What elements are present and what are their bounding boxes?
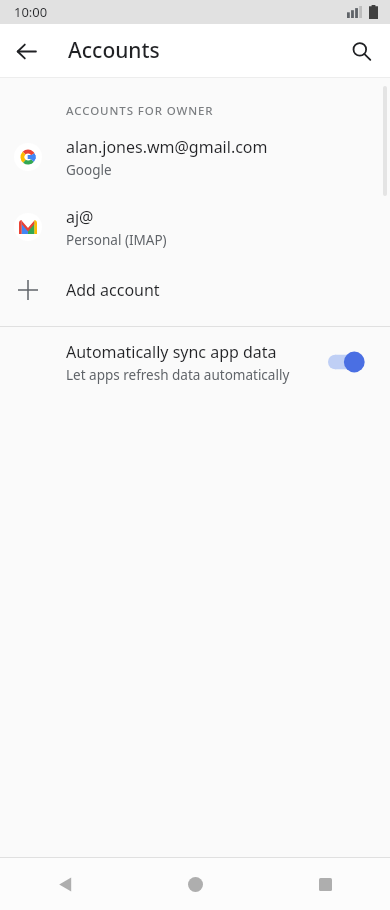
staticText: Automatically sync app data	[66, 341, 277, 363]
button[interactable]: alan.jones.wm@gmail.com	[0, 122, 390, 192]
button[interactable]: Automatically sync app data toggle	[328, 349, 368, 375]
staticText: 10:00	[14, 3, 48, 21]
staticText: Let apps refresh data automatically	[66, 366, 290, 384]
staticText: Personal (IMAP)	[66, 231, 167, 249]
button[interactable]: aj@	[0, 192, 390, 262]
staticText: ACCOUNTS FOR OWNER	[66, 103, 214, 119]
staticText: aj@	[66, 206, 94, 228]
button[interactable]: Search	[344, 34, 378, 68]
button[interactable]: Back	[10, 35, 42, 67]
button[interactable]: Recent apps	[260, 858, 390, 910]
button[interactable]: Back	[0, 858, 130, 910]
button[interactable]: Automatically sync app data	[0, 327, 390, 397]
staticText: Add account	[66, 279, 160, 301]
staticText: Accounts	[68, 36, 160, 65]
staticText: Google	[66, 161, 112, 179]
button[interactable]: Home	[130, 858, 260, 910]
staticText: alan.jones.wm@gmail.com	[66, 136, 268, 158]
button[interactable]: Add account	[0, 262, 390, 318]
